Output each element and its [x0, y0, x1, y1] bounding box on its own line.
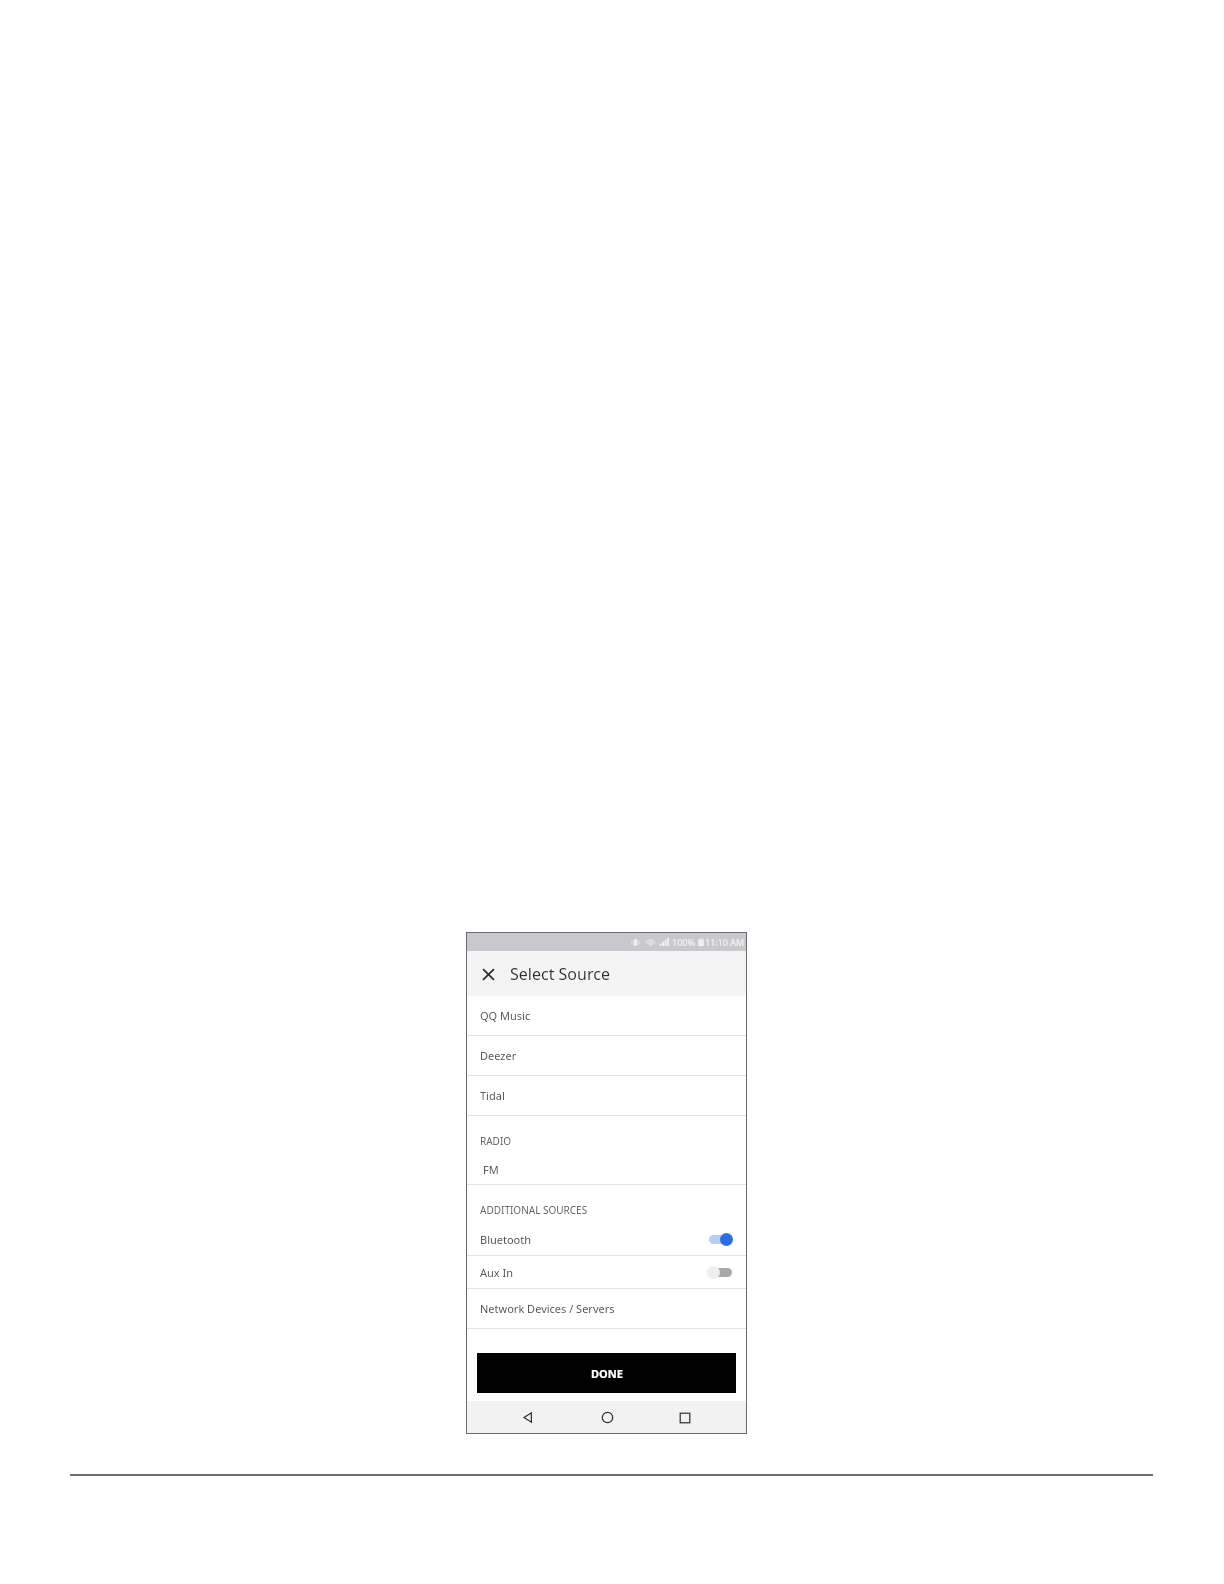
staticText: QQ Music: [480, 1008, 531, 1023]
staticText: FM: [483, 1162, 499, 1177]
staticText: 11:10 AM: [705, 936, 745, 948]
staticText: Tidal: [480, 1088, 505, 1103]
button[interactable]: QQ Music: [466, 996, 747, 1035]
button[interactable]: Close: [475, 961, 501, 987]
button[interactable]: Bluetooth: [466, 1223, 747, 1255]
button[interactable]: Home: [590, 1401, 624, 1434]
button[interactable]: Network Devices / Servers: [466, 1289, 747, 1328]
button[interactable]: DONE: [477, 1353, 736, 1393]
staticText: Select Source: [510, 963, 610, 985]
staticText: Aux In: [480, 1265, 514, 1280]
button[interactable]: Tidal: [466, 1076, 747, 1115]
button[interactable]: Aux In: [466, 1256, 747, 1288]
button[interactable]: FM: [466, 1154, 747, 1184]
staticText: Bluetooth: [480, 1232, 532, 1247]
staticText: DONE: [591, 1366, 623, 1381]
staticText: Deezer: [480, 1048, 517, 1063]
button[interactable]: Deezer: [466, 1036, 747, 1075]
staticText: RADIO: [480, 1134, 512, 1148]
button[interactable]: Recent apps: [668, 1401, 702, 1434]
staticText: ADDITIONAL SOURCES: [480, 1203, 588, 1217]
staticText: Network Devices / Servers: [480, 1301, 615, 1316]
staticText: 100%: [672, 936, 695, 948]
button[interactable]: Back: [511, 1401, 545, 1434]
